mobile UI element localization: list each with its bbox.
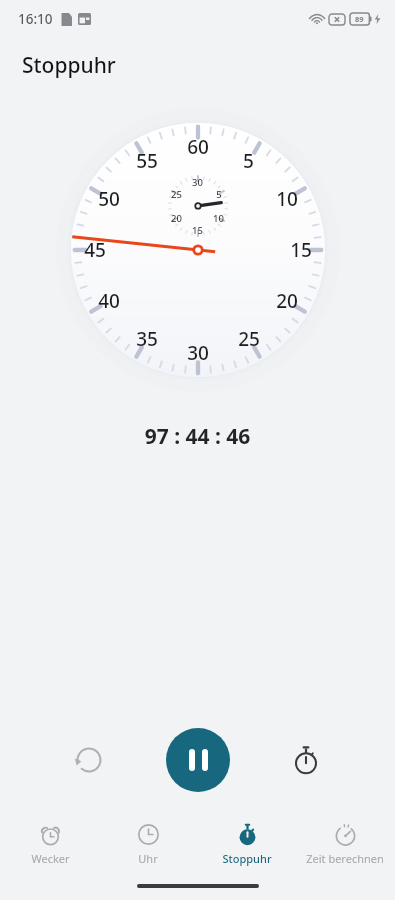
staticText: 35 <box>136 326 158 352</box>
staticText: 25 <box>238 326 260 352</box>
staticText: 50 <box>98 186 120 212</box>
staticText: 55 <box>136 148 158 174</box>
staticText: 45 <box>84 237 106 263</box>
button[interactable]: Pause <box>166 728 230 792</box>
staticText: 15 <box>290 237 312 263</box>
staticText: 97 : 44 : 46 <box>0 422 395 451</box>
button[interactable]: Stoppuhr <box>199 821 295 868</box>
button[interactable]: Wecker <box>2 821 98 868</box>
button[interactable]: Zurücksetzen <box>57 728 121 792</box>
staticText: 16:10 <box>18 10 53 28</box>
staticText: 30 <box>187 340 209 366</box>
button[interactable]: Runde <box>274 728 338 792</box>
staticText: Uhr <box>138 851 158 866</box>
staticText: 20 <box>171 212 182 225</box>
staticText: Stoppuhr <box>22 51 116 80</box>
staticText: Wecker <box>31 851 70 866</box>
staticText: 40 <box>98 288 120 314</box>
staticText: 10 <box>213 212 224 225</box>
staticText: 60 <box>187 134 209 160</box>
button[interactable]: Uhr <box>100 821 196 868</box>
staticText: 89 <box>355 14 364 24</box>
staticText: 15 <box>192 224 203 237</box>
staticText: 20 <box>276 288 298 314</box>
staticText: 30 <box>192 176 203 189</box>
staticText: 5 <box>216 188 222 201</box>
staticText: 10 <box>276 186 298 212</box>
button[interactable]: Zeit berechnen <box>297 821 393 868</box>
staticText: 5 <box>243 148 254 174</box>
staticText: Zeit berechnen <box>306 851 384 866</box>
staticText: 25 <box>171 188 182 201</box>
staticText: Stoppuhr <box>222 851 272 866</box>
